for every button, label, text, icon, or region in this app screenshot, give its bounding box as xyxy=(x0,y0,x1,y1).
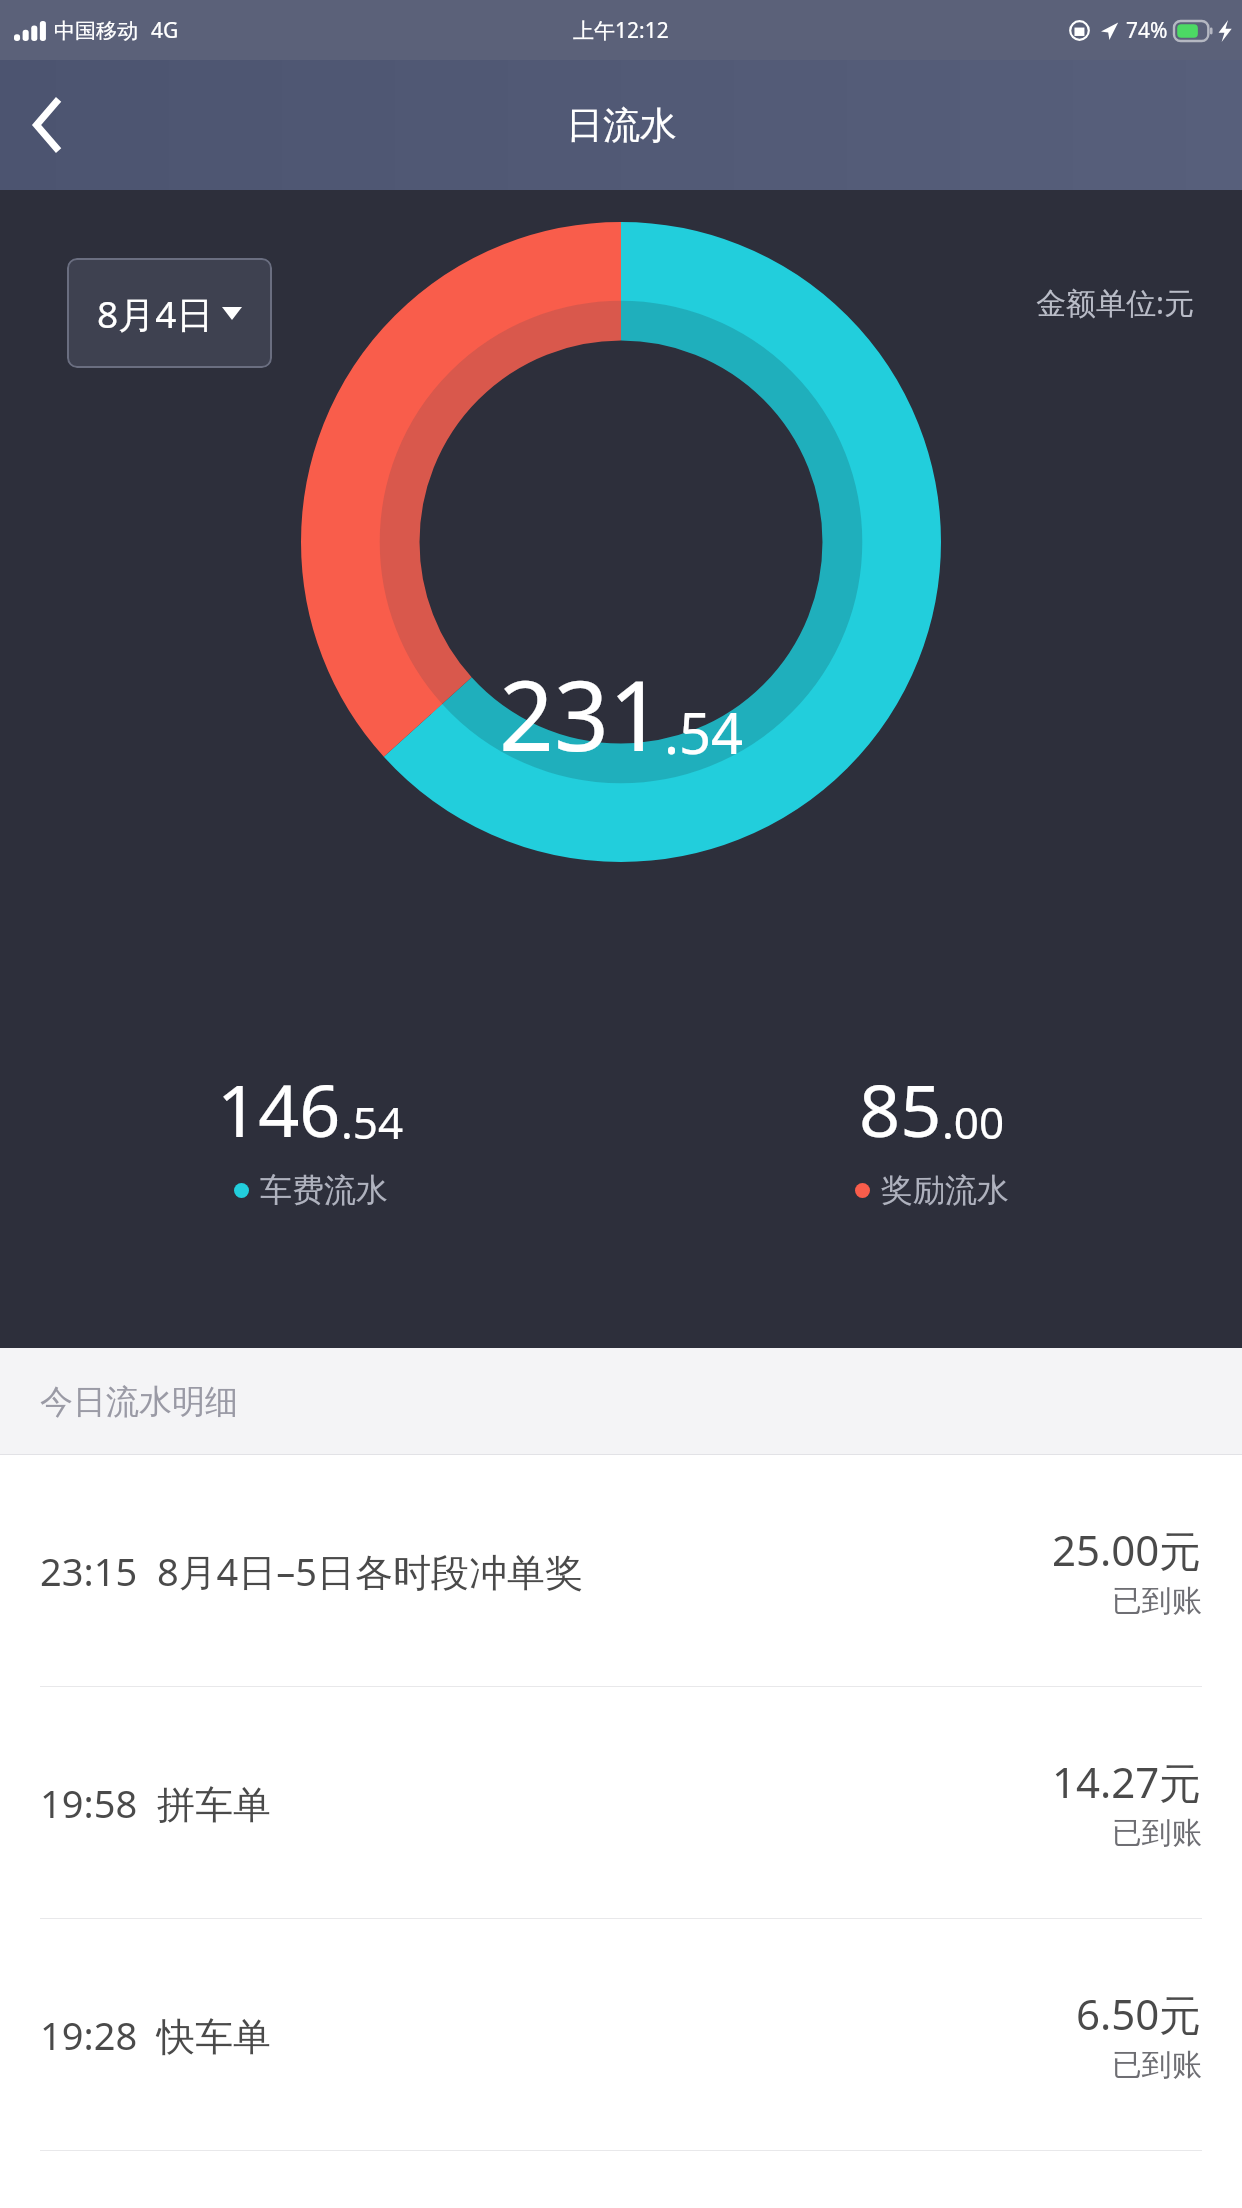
staticText: 已到账 xyxy=(1112,1814,1202,1852)
staticText: 已到账 xyxy=(1112,2046,1202,2084)
staticText: 今日流水明细 xyxy=(40,1381,238,1423)
staticText: .00 xyxy=(942,1092,1005,1152)
staticText: .54 xyxy=(341,1092,404,1152)
staticText: 日流水 xyxy=(566,102,677,149)
staticText: 146 xyxy=(217,1060,341,1158)
button[interactable]: 19:28 快车单 xyxy=(0,1919,1242,2150)
staticText: 车费流水 xyxy=(260,1170,388,1210)
staticText: 金额单位:元 xyxy=(1036,282,1195,323)
button[interactable]: 19:58 拼车单 xyxy=(0,1687,1242,1918)
staticText: 奖励流水 xyxy=(881,1170,1009,1210)
staticText: 19:58 拼车单 xyxy=(40,1777,271,1829)
staticText: 14.27元 xyxy=(1052,1753,1202,1810)
button[interactable]: Back xyxy=(0,77,96,173)
staticText: 中国移动 xyxy=(54,18,138,44)
button[interactable]: 23:15 8月4日–5日各时段冲单奖 xyxy=(0,1455,1242,1686)
staticText: 74% xyxy=(1126,16,1168,45)
staticText: 已到账 xyxy=(1112,1582,1202,1620)
staticText: 上午12:12 xyxy=(573,16,669,45)
staticText: 231 xyxy=(499,648,664,779)
staticText: 25.00元 xyxy=(1052,1521,1202,1578)
staticText: .54 xyxy=(664,694,744,770)
staticText: 23:15 8月4日–5日各时段冲单奖 xyxy=(40,1545,584,1597)
staticText: 85 xyxy=(859,1060,942,1158)
staticText: 8月4日 xyxy=(97,288,214,339)
button[interactable]: 8月4日 xyxy=(67,258,272,368)
staticText: 6.50元 xyxy=(1076,1985,1202,2042)
staticText: 4G xyxy=(151,16,179,45)
staticText: 19:28 快车单 xyxy=(40,2009,271,2061)
